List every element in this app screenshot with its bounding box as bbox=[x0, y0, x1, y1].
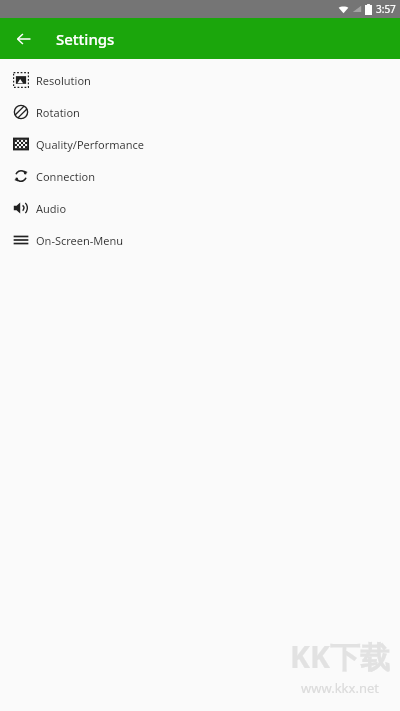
staticText: On-Screen-Menu bbox=[36, 233, 124, 248]
button[interactable]: Back bbox=[6, 21, 42, 57]
staticText: KK下载 bbox=[290, 636, 390, 677]
button[interactable]: Resolution bbox=[0, 64, 400, 96]
staticText: Connection bbox=[36, 169, 95, 184]
staticText: Settings bbox=[56, 29, 115, 49]
staticText: Audio bbox=[36, 201, 67, 216]
staticText: Resolution bbox=[36, 73, 91, 88]
staticText: Rotation bbox=[36, 105, 80, 120]
staticText: Quality/Performance bbox=[36, 137, 145, 152]
staticText: www.kkx.net bbox=[301, 679, 379, 697]
button[interactable]: Rotation bbox=[0, 96, 400, 128]
staticText: 3:57 bbox=[376, 2, 396, 16]
button[interactable]: Connection bbox=[0, 160, 400, 192]
button[interactable]: Quality/Performance bbox=[0, 128, 400, 160]
button[interactable]: Audio bbox=[0, 192, 400, 224]
button[interactable]: On-Screen-Menu bbox=[0, 224, 400, 256]
